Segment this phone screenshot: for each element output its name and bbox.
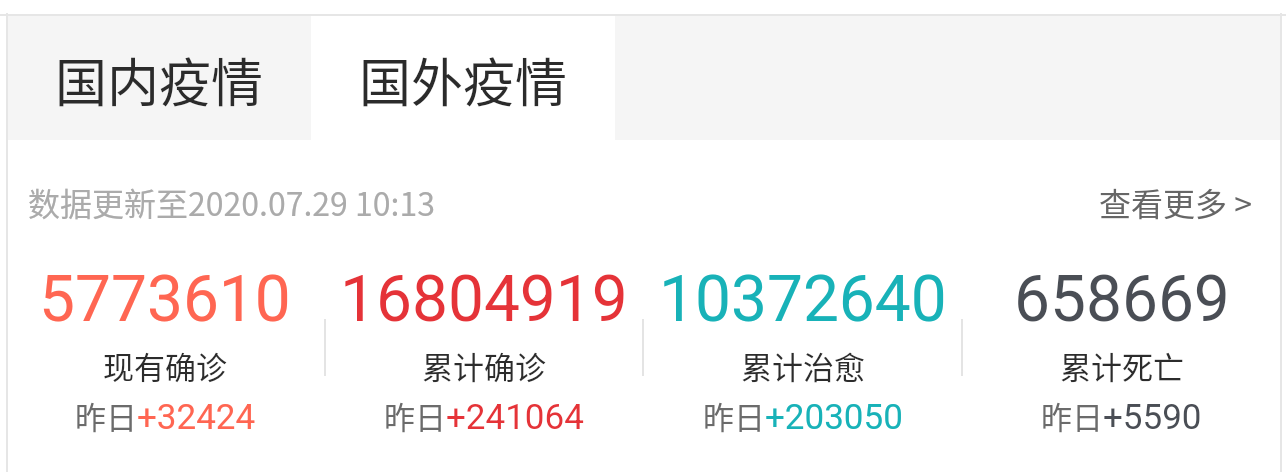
button[interactable]: 5773610 (6, 262, 324, 438)
button[interactable]: 658669 (962, 262, 1281, 438)
staticText: 累计治愈 (741, 343, 865, 388)
staticText: 昨日+5590 (1041, 393, 1202, 438)
staticText: 现有确诊 (103, 343, 227, 388)
staticText: 5773610 (39, 262, 291, 337)
staticText: 昨日+241064 (384, 393, 584, 438)
staticText: 查看更多 > (1099, 179, 1252, 225)
button[interactable]: 查看更多 (1099, 179, 1252, 225)
button[interactable]: 国内疫情 (7, 15, 311, 140)
staticText: 国内疫情 (55, 42, 264, 117)
button[interactable]: 国外疫情 (311, 15, 615, 140)
button[interactable]: 16804919 (324, 262, 643, 438)
staticText: 国外疫情 (359, 42, 568, 117)
staticText: 累计确诊 (422, 343, 546, 388)
button[interactable]: 10372640 (643, 262, 962, 438)
staticText: 658669 (1014, 262, 1230, 337)
staticText: 16804919 (340, 262, 628, 337)
staticText: 昨日+32424 (75, 393, 256, 438)
staticText: 数据更新至2020.07.29 10:13 (28, 179, 435, 225)
staticText: 昨日+203050 (703, 393, 903, 438)
staticText: 累计死亡 (1060, 343, 1184, 388)
staticText: 10372640 (659, 262, 947, 337)
